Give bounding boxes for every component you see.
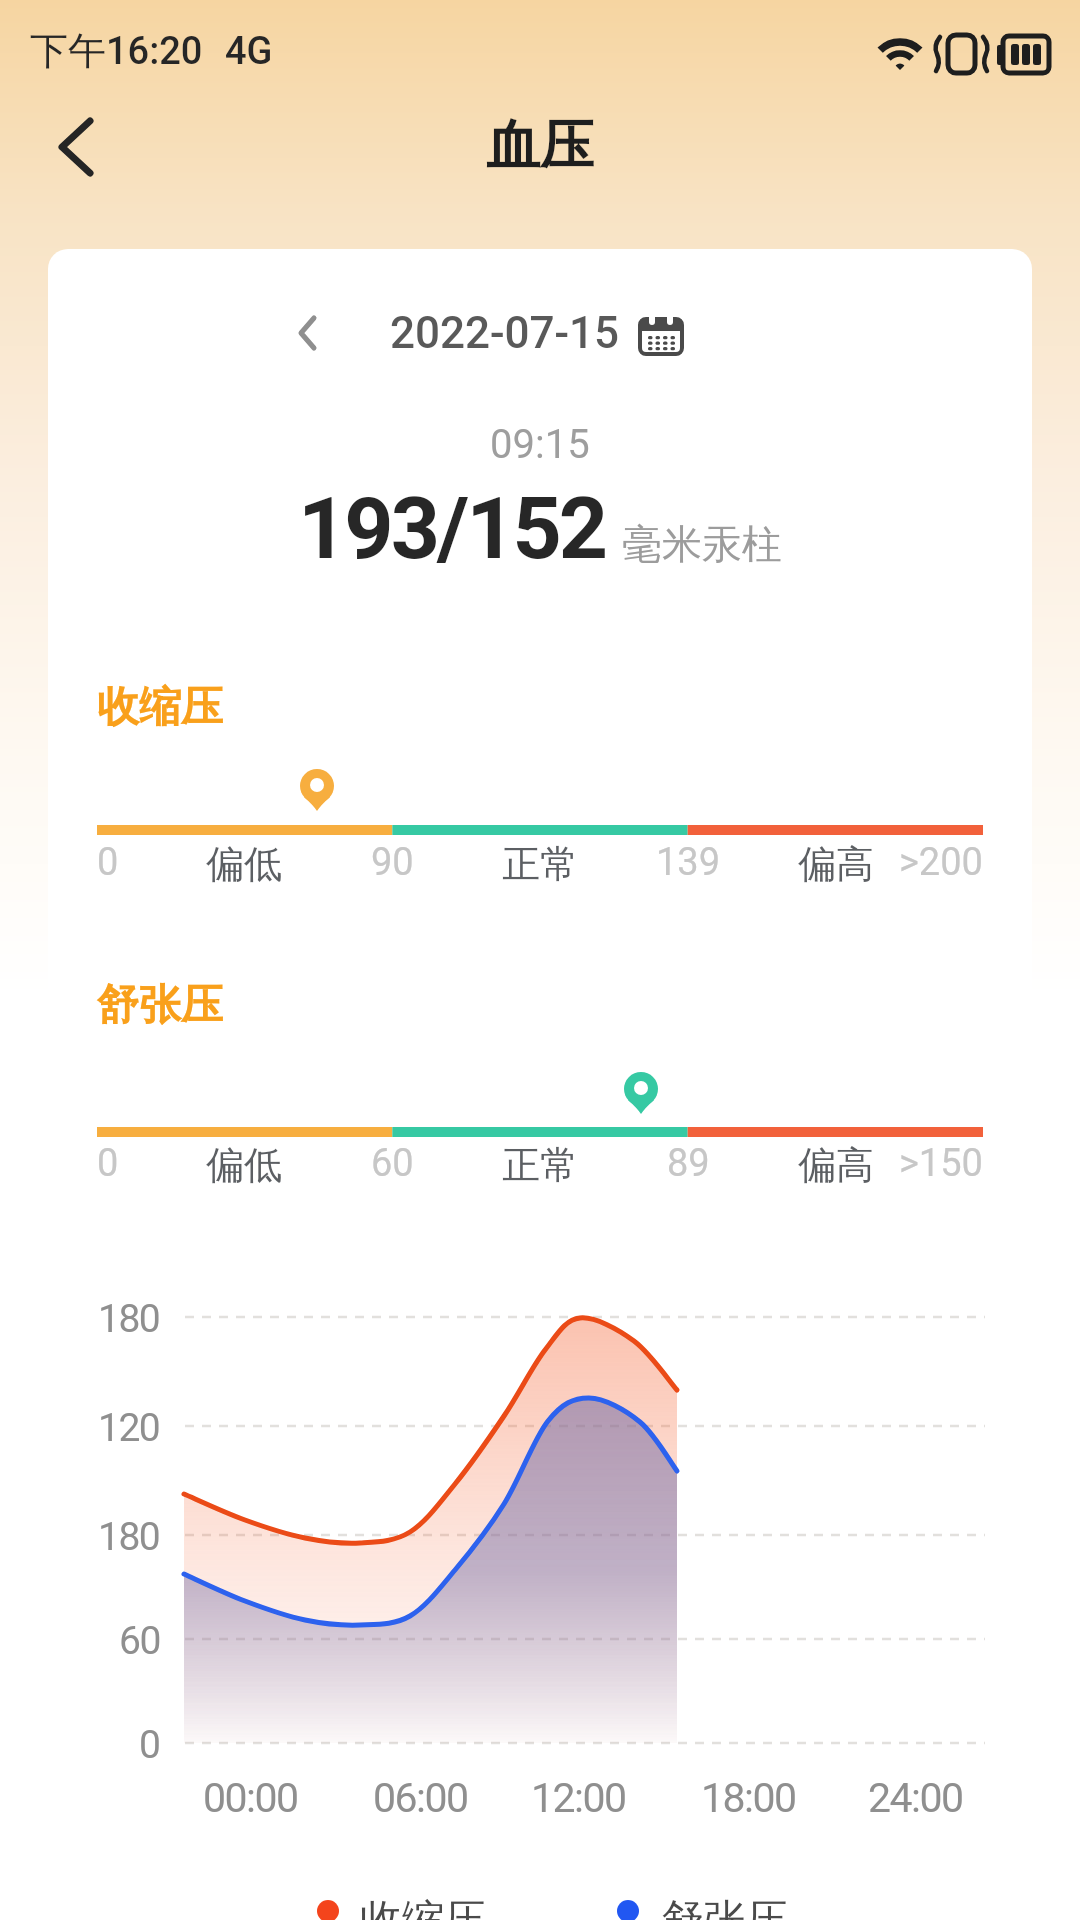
staticText: 180	[98, 1514, 160, 1560]
staticText: 毫米汞柱	[622, 519, 782, 569]
staticText: 4G	[225, 29, 273, 74]
staticText: 18:00	[701, 1774, 796, 1822]
staticText: 正常	[502, 840, 578, 888]
staticText: 60	[119, 1618, 160, 1664]
staticText: 00:00	[203, 1774, 298, 1822]
staticText: 收缩压	[97, 681, 223, 734]
staticText: 舒张压	[97, 979, 223, 1032]
staticText: 89	[667, 1141, 710, 1186]
staticText: 0	[97, 840, 119, 885]
staticText: 偏高	[798, 840, 874, 888]
staticText: 90	[371, 840, 414, 885]
staticText: 偏低	[206, 1141, 282, 1189]
staticText: 舒张压	[662, 1894, 788, 1920]
staticText: 血压	[486, 112, 594, 180]
staticText: 收缩压	[360, 1894, 486, 1920]
staticText: 193/152	[298, 478, 606, 579]
staticText: 24:00	[868, 1774, 963, 1822]
staticText: 60	[371, 1141, 414, 1186]
staticText: 偏高	[798, 1141, 874, 1189]
staticText: 180	[98, 1296, 160, 1342]
staticText: 0	[97, 1141, 119, 1186]
staticText: 09:15	[490, 421, 590, 468]
staticText: 06:00	[373, 1774, 468, 1822]
staticText: 偏低	[206, 840, 282, 888]
staticText: >150	[899, 1141, 983, 1186]
staticText: 2022-07-15	[390, 307, 619, 359]
button[interactable]	[40, 112, 112, 184]
staticText: 12:00	[531, 1774, 626, 1822]
staticText: 139	[656, 840, 721, 885]
staticText: 0	[139, 1722, 160, 1768]
staticText: >200	[899, 840, 983, 885]
staticText: 下午16:20	[30, 27, 203, 75]
button[interactable]: 2022-07-15	[298, 307, 683, 359]
staticText: 120	[98, 1405, 160, 1451]
staticText: 正常	[502, 1141, 578, 1189]
